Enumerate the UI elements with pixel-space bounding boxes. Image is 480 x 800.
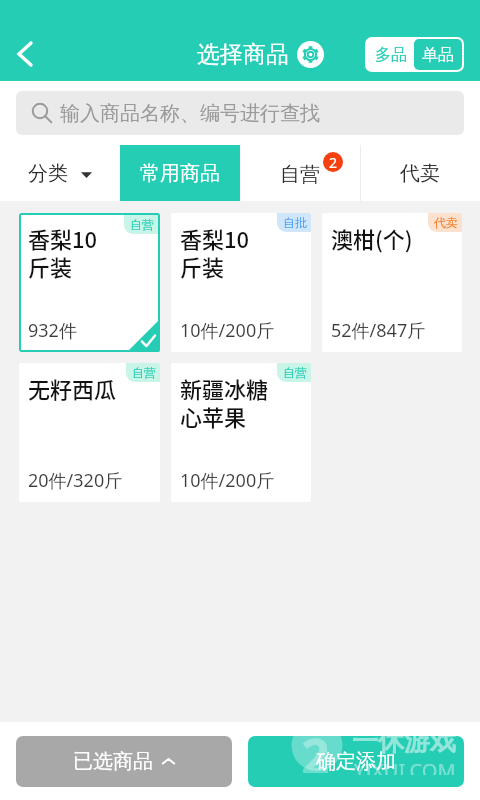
staticText: 香梨10 斤装 (180, 222, 250, 283)
staticText: 20件/320斤 (28, 468, 123, 493)
button[interactable]: 单品 (414, 39, 462, 70)
staticText: 新疆冰糖 心苹果 (180, 372, 269, 433)
staticText: 2 (301, 736, 330, 773)
staticText: 代卖 (434, 215, 458, 230)
staticText: 香梨10 斤装 (28, 222, 98, 283)
staticText: 一休游戏 (352, 736, 456, 758)
button[interactable]: 自营 (240, 145, 360, 201)
staticText: 多品 (375, 45, 407, 65)
staticText: 932件 (28, 318, 77, 343)
button[interactable]: 常用商品 (120, 145, 240, 201)
button[interactable]: 确定添加 (248, 736, 464, 787)
staticText: 已选商品 (73, 749, 153, 774)
button[interactable]: 代卖 (322, 213, 462, 352)
button[interactable]: 自营 (19, 213, 160, 352)
button[interactable]: 输入商品名称、编号进行查找 (16, 91, 464, 135)
button[interactable]: 自批 (171, 213, 311, 352)
button[interactable]: 代卖 (360, 145, 480, 201)
staticText: 分类 (28, 161, 68, 186)
button[interactable]: Settings (297, 41, 324, 68)
staticText: 代卖 (400, 161, 440, 186)
staticText: 自营 (280, 162, 320, 187)
staticText: 输入商品名称、编号进行查找 (60, 101, 320, 126)
button[interactable]: 自营 (171, 363, 311, 502)
staticText: 自批 (283, 215, 307, 230)
button[interactable]: Back (0, 29, 50, 79)
staticText: 自营 (283, 365, 307, 380)
staticText: 2 (329, 153, 338, 172)
staticText: 52件/847斤 (331, 318, 426, 343)
button[interactable]: 分类 (0, 145, 120, 201)
staticText: 澳柑(个) (331, 222, 413, 254)
button[interactable]: 自营 (19, 363, 160, 502)
button[interactable]: 已选商品 (16, 736, 232, 787)
staticText: 单品 (422, 45, 454, 65)
staticText: 10件/200斤 (180, 468, 275, 493)
button[interactable]: 多品 (367, 39, 414, 70)
staticText: 选择商品 (197, 40, 289, 69)
staticText: YIXUI.COM (354, 757, 456, 775)
staticText: 常用商品 (140, 161, 220, 186)
staticText: 无籽西瓜 (28, 372, 117, 404)
staticText: 确定添加 (316, 749, 396, 774)
staticText: 自营 (132, 365, 156, 380)
staticText: 自营 (130, 217, 154, 232)
staticText: 10件/200斤 (180, 318, 275, 343)
